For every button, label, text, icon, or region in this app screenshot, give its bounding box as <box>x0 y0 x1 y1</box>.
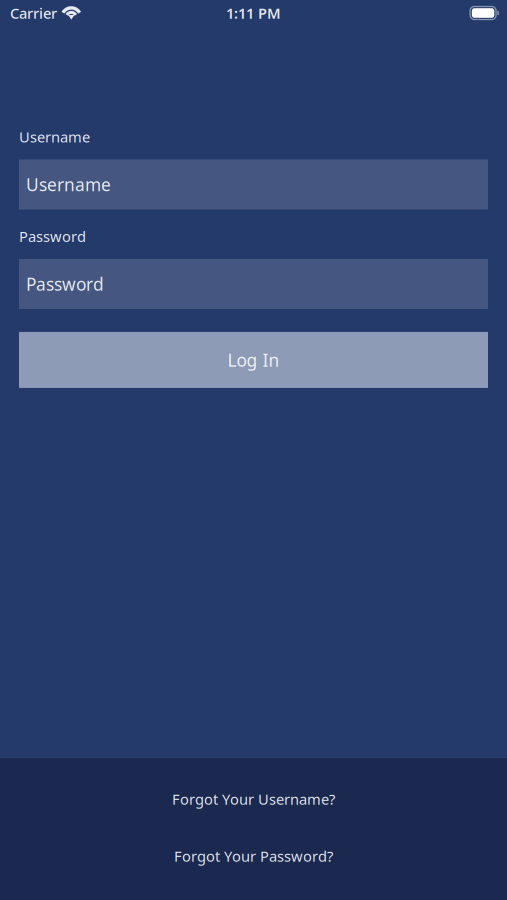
button[interactable]: Forgot Your Username? <box>0 788 507 810</box>
staticText: Password <box>26 272 104 295</box>
button[interactable]: Password <box>19 259 488 309</box>
staticText: Password <box>19 226 86 246</box>
staticText: Carrier <box>10 3 57 23</box>
staticText: Username <box>19 127 90 146</box>
staticText: Username <box>26 173 111 196</box>
button[interactable]: Forgot Your Password? <box>0 845 507 867</box>
staticText: 1:11 PM <box>226 3 281 23</box>
button[interactable]: Log In <box>19 332 488 388</box>
button[interactable]: Username <box>19 159 488 209</box>
staticText: Forgot Your Username? <box>172 789 335 809</box>
staticText: Log In <box>227 348 279 371</box>
staticText: Forgot Your Password? <box>174 846 333 866</box>
